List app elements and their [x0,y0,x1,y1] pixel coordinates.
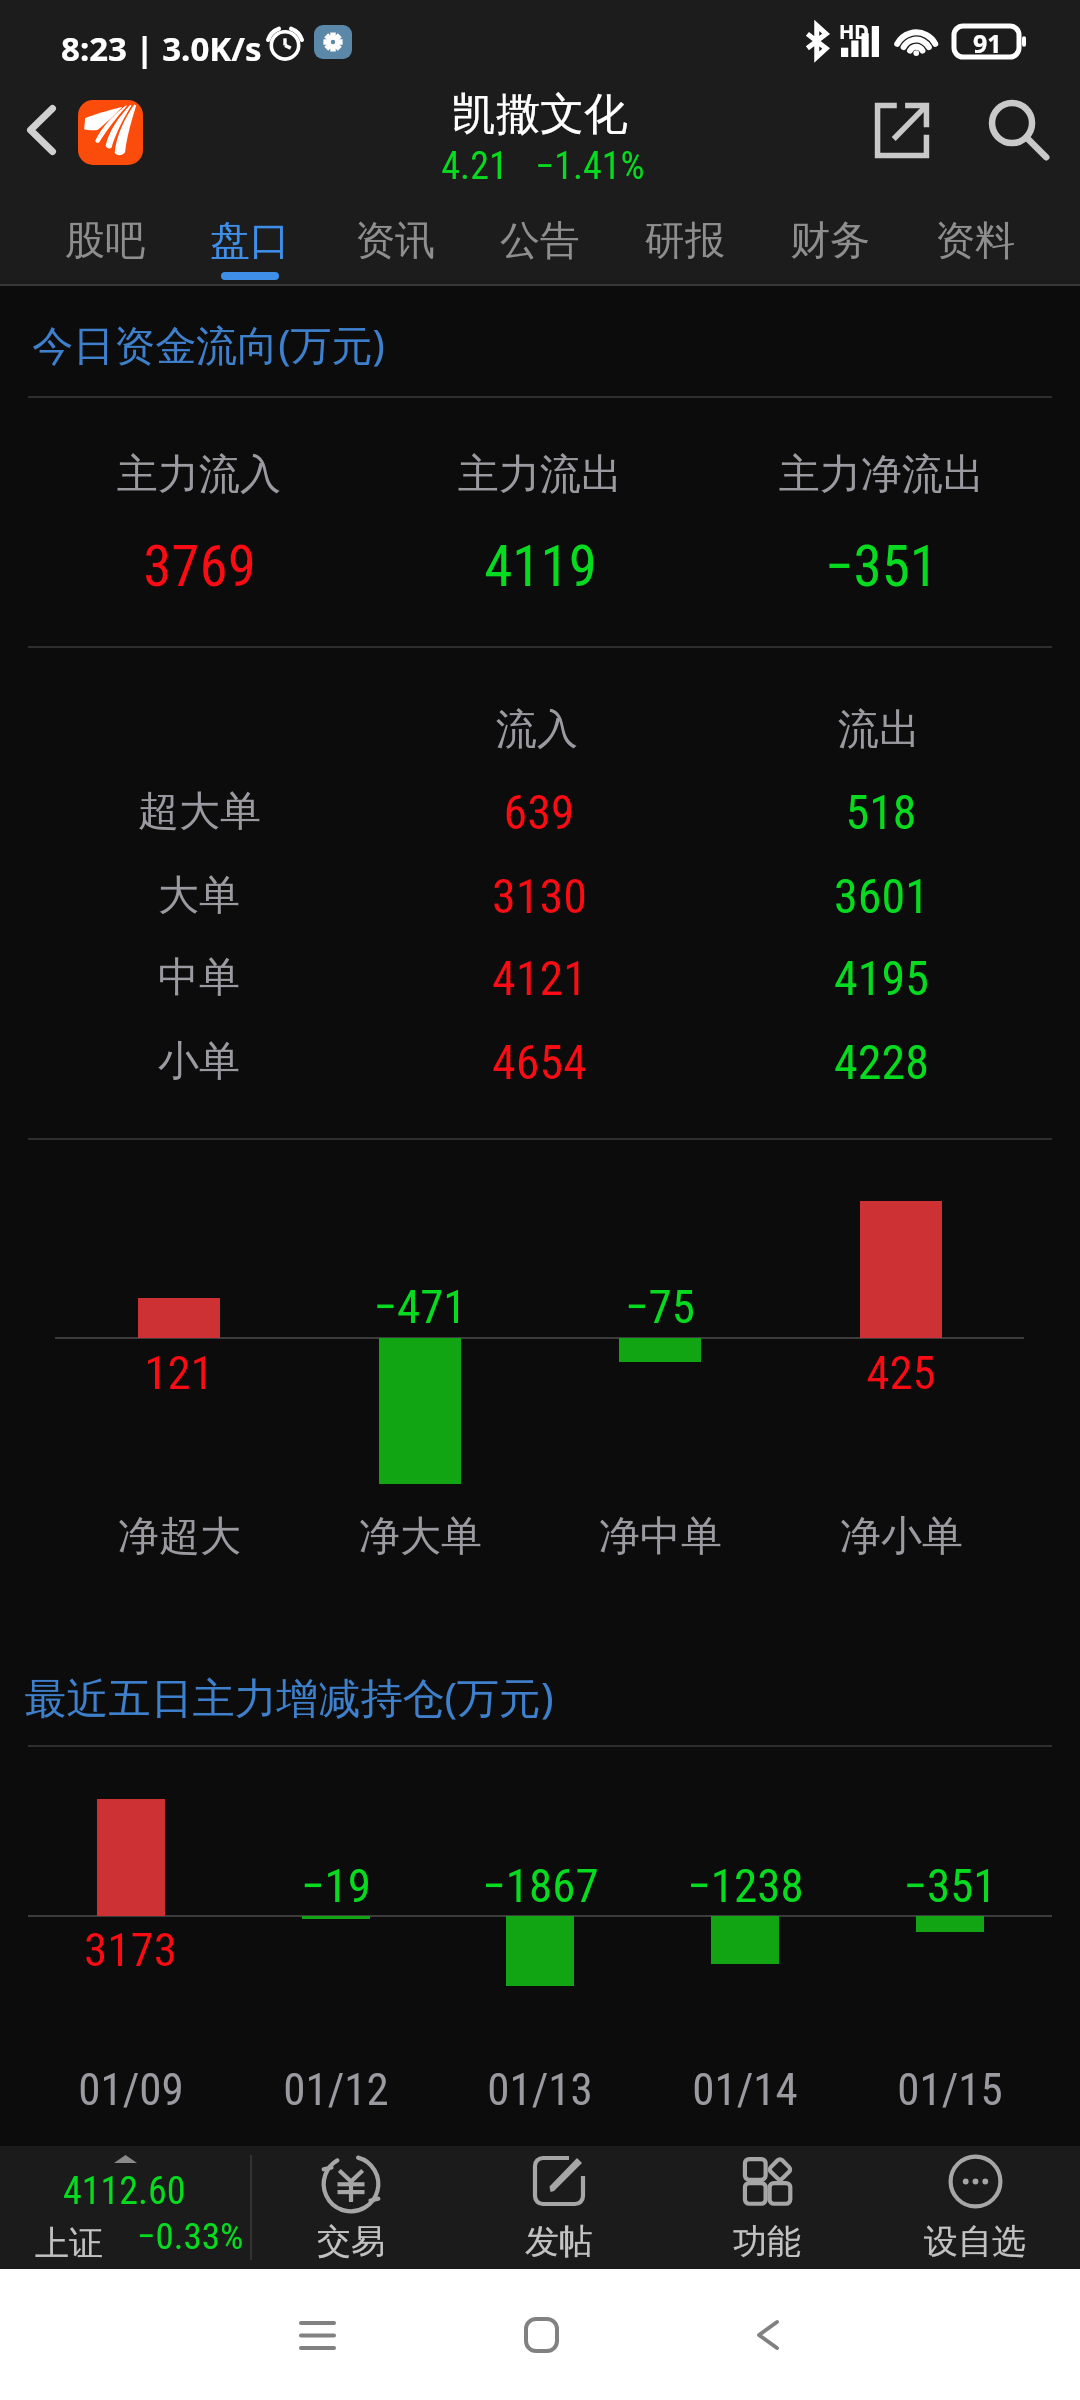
button[interactable]: 资讯 [323,188,467,286]
staticText: 121 [144,1345,214,1400]
staticText: 3601 [834,868,929,924]
staticText: 3769 [143,533,256,600]
staticText: 上证 [35,2222,103,2265]
staticText: −0.33% [137,2215,244,2258]
button[interactable]: 交易 [247,2146,455,2269]
staticText: 4654 [492,1034,587,1090]
staticText: 大单 [158,870,240,922]
staticText: 主力流入 [117,449,281,501]
staticText: 小单 [158,1036,240,1088]
staticText: 功能 [733,2220,801,2263]
staticText: 设自选 [924,2220,1026,2263]
staticText: 01/13 [487,2063,593,2116]
button[interactable]: Share [852,80,954,180]
staticText: 4112.60 [63,2169,186,2214]
staticText: −351 [903,1858,997,1913]
staticText: −19 [301,1858,371,1913]
staticText: 4228 [834,1034,929,1090]
staticText: 资讯 [355,215,435,265]
staticText: 超大单 [138,786,261,838]
staticText: 425 [866,1345,936,1400]
staticText: −1.41% [535,144,645,189]
button[interactable]: Back [718,2285,818,2385]
staticText: 净超大 [118,1511,241,1563]
staticText: 主力净流出 [779,449,984,501]
staticText: 中单 [158,952,240,1004]
button[interactable]: 功能 [663,2146,871,2269]
button[interactable]: 财务 [758,188,902,286]
button[interactable]: 发帖 [455,2146,663,2269]
button[interactable]: 公告 [468,188,612,286]
button[interactable]: 4112.60 [0,2146,250,2269]
button[interactable]: 股吧 [33,188,177,286]
staticText: 股吧 [65,215,145,265]
staticText: 流出 [838,704,920,756]
staticText: 凯撒文化 [452,87,628,142]
button[interactable]: 研报 [613,188,757,286]
button[interactable]: Home [491,2285,591,2385]
staticText: 最近五日主力增减持仓(万元) [24,1668,554,1725]
staticText: −1238 [687,1858,804,1913]
button[interactable]: 盘口 [178,188,322,286]
staticText: 3173 [84,1922,177,1977]
staticText: −351 [825,533,938,600]
staticText: 研报 [645,215,725,265]
staticText: 4.21 [441,144,508,189]
staticText: 639 [503,784,575,840]
staticText: 8:23 | 3.0K/s [61,26,262,71]
staticText: 01/12 [283,2063,389,2116]
staticText: 01/09 [78,2063,184,2116]
button[interactable]: Recents [267,2285,367,2385]
staticText: 01/14 [692,2063,798,2116]
staticText: −1867 [482,1858,599,1913]
staticText: −471 [373,1279,467,1334]
staticText: −75 [625,1279,695,1334]
staticText: 01/15 [897,2063,1003,2116]
staticText: 91 [973,26,1002,57]
staticText: 518 [845,784,917,840]
staticText: 公告 [500,215,580,265]
staticText: 3130 [492,868,587,924]
staticText: 4195 [834,950,929,1006]
staticText: 净大单 [359,1511,482,1563]
staticText: 今日资金流向(万元) [32,316,385,372]
staticText: 4121 [492,950,587,1006]
staticText: 盘口 [210,215,290,265]
staticText: HD [839,18,869,45]
button[interactable]: Search [960,80,1076,180]
staticText: 4119 [484,533,597,600]
staticText: 财务 [790,215,870,265]
button[interactable]: App home [78,100,143,165]
staticText: 资料 [935,215,1015,265]
staticText: 流入 [496,704,578,756]
staticText: 净中单 [599,1511,722,1563]
button[interactable]: Back [0,85,83,175]
staticText: 交易 [317,2220,385,2263]
button[interactable]: 资料 [903,188,1047,286]
staticText: 净小单 [840,1511,963,1563]
button[interactable]: 设自选 [871,2146,1079,2269]
staticText: 主力流出 [458,449,622,501]
staticText: 发帖 [525,2220,593,2263]
